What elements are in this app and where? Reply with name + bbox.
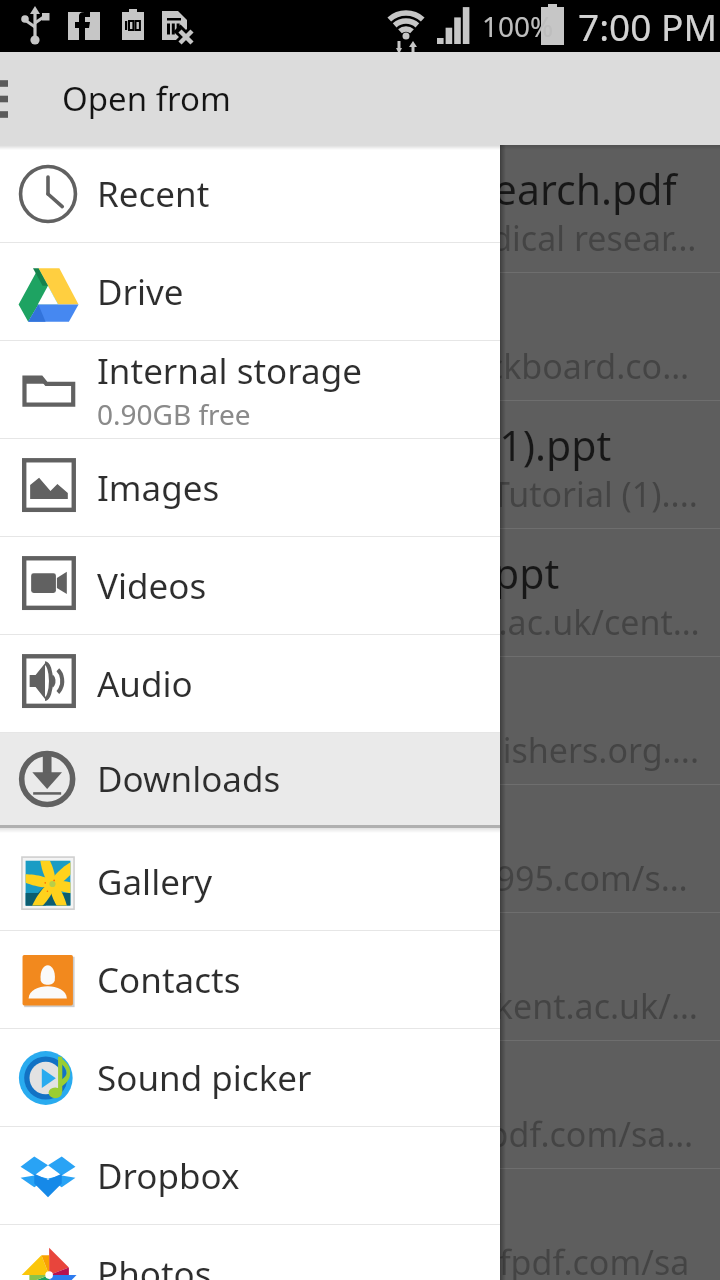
staticText: Gallery <box>97 858 213 906</box>
button[interactable]: Open navigation drawer <box>0 77 8 121</box>
staticText: Contacts <box>97 956 241 1004</box>
staticText: Audio <box>97 660 193 708</box>
staticText: Videos <box>97 562 207 610</box>
staticText: Drive <box>97 268 184 316</box>
staticText: 7:00 PM <box>578 1 717 51</box>
staticText: (1).ppt <box>487 417 612 473</box>
button[interactable]: Sound picker <box>0 1029 500 1126</box>
staticText: Internal storage <box>97 347 362 395</box>
staticText: .ppt <box>483 545 560 601</box>
button[interactable]: Close navigation drawer <box>506 145 720 1280</box>
button[interactable]: Downloads <box>0 733 500 825</box>
staticText: 2.le.ac.uk/cent… <box>442 599 700 645</box>
staticText: dfpdf.com/sa… <box>455 1111 694 1157</box>
staticText: 100% <box>482 7 554 45</box>
staticText: Sound picker <box>97 1054 312 1102</box>
staticText: df995.com/s… <box>463 855 688 901</box>
button[interactable]: Images <box>0 439 500 536</box>
staticText: 0.90GB free <box>97 395 251 433</box>
button[interactable]: Photos <box>0 1225 500 1280</box>
button[interactable]: Videos <box>0 537 500 634</box>
button[interactable]: Audio <box>0 635 500 732</box>
button[interactable]: Internal storage <box>0 341 500 438</box>
staticText: Open from <box>62 76 231 121</box>
staticText: Downloads <box>97 755 281 803</box>
staticText: nedical resear… <box>451 215 697 261</box>
staticText: Recent <box>97 170 210 218</box>
staticText: Images <box>97 464 220 512</box>
button[interactable]: Gallery <box>0 833 500 930</box>
staticText: g_Tutorial (1).... <box>455 471 698 517</box>
staticText: Dropbox <box>97 1152 240 1200</box>
button[interactable]: Recent <box>0 145 500 242</box>
staticText: dfpdf.com/sa <box>478 1239 690 1280</box>
staticText: Photos <box>97 1250 212 1280</box>
button[interactable]: Drive <box>0 243 500 340</box>
staticText: esearch.pdf <box>451 161 677 217</box>
staticText: lackboard.co… <box>459 343 690 389</box>
button[interactable]: Dropbox <box>0 1127 500 1224</box>
staticText: ublishers.org.... <box>452 727 700 773</box>
button[interactable]: Contacts <box>0 931 500 1028</box>
staticText: .cs.kent.ac.uk/… <box>444 983 698 1029</box>
